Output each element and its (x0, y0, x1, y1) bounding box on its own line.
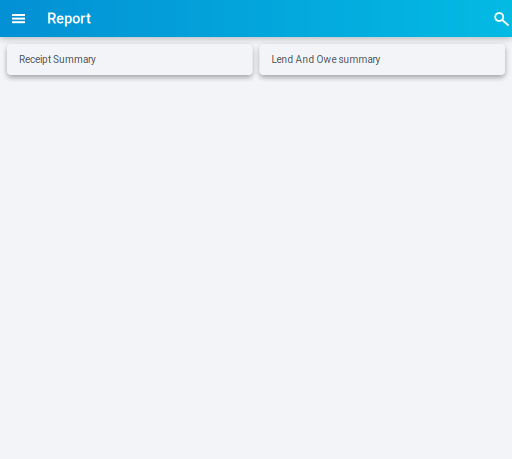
staticText: Receipt Summary (19, 54, 96, 65)
staticText: Lend And Owe summary (271, 54, 380, 65)
button[interactable]: Search (489, 0, 512, 37)
button[interactable]: Lend And Owe summary (259, 44, 505, 75)
button[interactable]: Menu (6, 0, 31, 37)
staticText: Report (47, 10, 91, 27)
button[interactable]: Receipt Summary (7, 44, 252, 75)
